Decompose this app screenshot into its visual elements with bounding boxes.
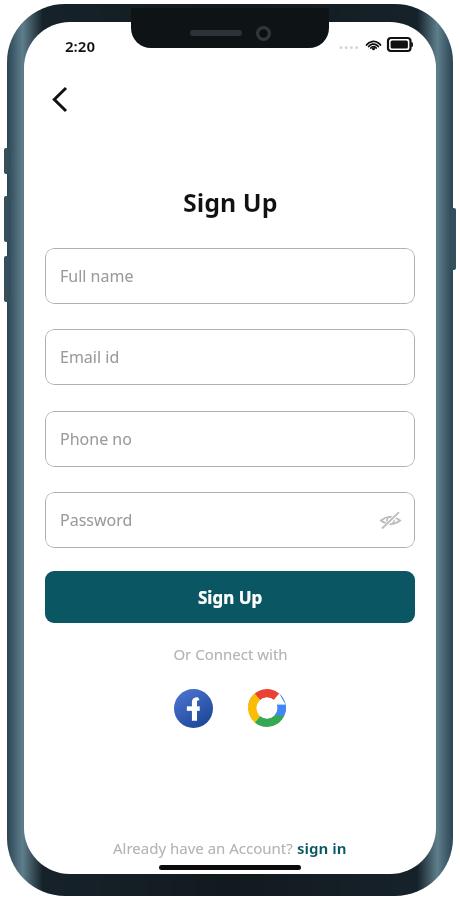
staticText: Phone no — [60, 428, 132, 450]
staticText: 2:20 — [65, 36, 95, 56]
button[interactable]: Phone no — [45, 411, 415, 467]
button[interactable]: Back — [37, 77, 81, 121]
staticText: Sign Up — [198, 586, 263, 609]
staticText: Password — [60, 509, 133, 531]
button[interactable]: Sign Up — [45, 571, 415, 623]
button[interactable]: Email id — [45, 329, 415, 385]
staticText: sign in — [297, 838, 347, 858]
button[interactable]: Sign up with Google — [245, 686, 289, 730]
button[interactable]: Full name — [45, 248, 415, 304]
button[interactable]: sign in — [297, 838, 347, 858]
button[interactable]: Toggle password visibility — [375, 505, 405, 535]
staticText: Sign Up — [183, 185, 278, 219]
button[interactable]: Password — [45, 492, 415, 548]
staticText: Or Connect with — [173, 644, 288, 664]
staticText: Already have an Account? — [113, 838, 297, 858]
staticText: Full name — [60, 265, 134, 287]
staticText: Email id — [60, 346, 120, 368]
button[interactable]: Sign up with Facebook — [171, 686, 215, 730]
